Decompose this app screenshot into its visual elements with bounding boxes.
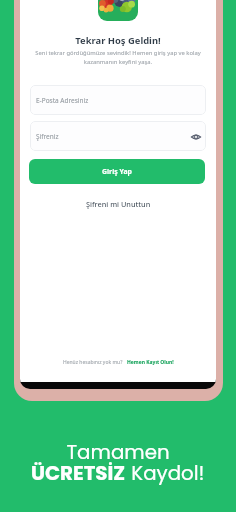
button[interactable]: E-Posta Adresiniz bbox=[30, 85, 206, 115]
staticText: ÜCRETSİZ bbox=[31, 459, 126, 487]
button[interactable]: Giriş Yap bbox=[29, 159, 205, 184]
button[interactable]: Şifreni mi Unuttun bbox=[84, 199, 153, 209]
button[interactable]: Hemen Kayıt Olun! bbox=[127, 359, 174, 366]
staticText: Tamamen bbox=[66, 438, 170, 466]
staticText: Henüz hesabınız yok mu? bbox=[63, 359, 123, 366]
staticText: Şifreniz bbox=[36, 132, 59, 141]
staticText: E-Posta Adresiniz bbox=[36, 96, 89, 105]
staticText: Şifreni mi Unuttun bbox=[86, 199, 151, 209]
button[interactable]: Show password bbox=[190, 131, 201, 142]
button[interactable]: Şifreniz bbox=[30, 121, 206, 151]
staticText: Hemen Kayıt Olun! bbox=[127, 359, 174, 366]
staticText: Seni tekrar gördüğümüze sevindik! Hemen … bbox=[26, 49, 210, 66]
staticText: Tekrar Hoş Geldin! bbox=[75, 34, 161, 47]
staticText: Kaydol! bbox=[126, 459, 205, 487]
staticText: Giriş Yap bbox=[102, 167, 132, 176]
